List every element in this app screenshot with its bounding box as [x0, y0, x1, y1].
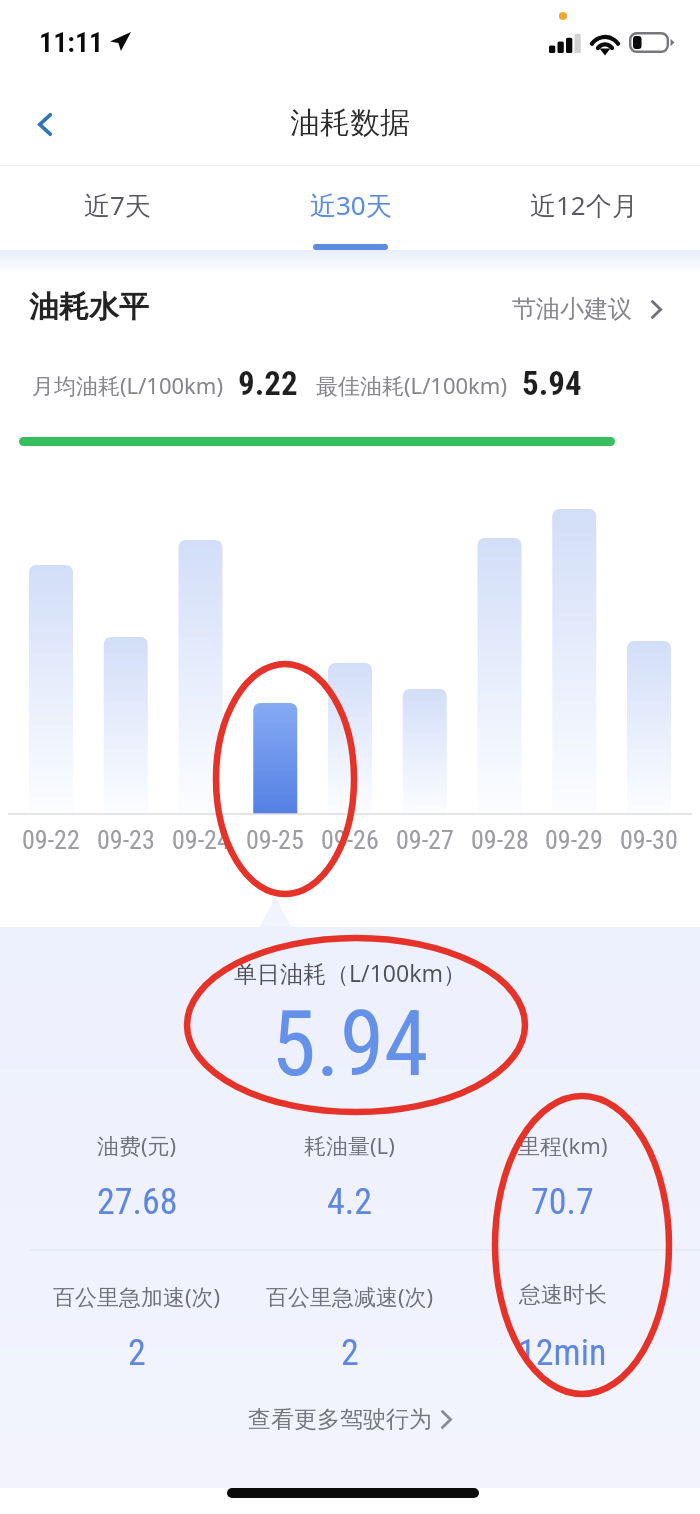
staticText: 近12个月: [530, 187, 638, 223]
button[interactable]: Back: [17, 96, 73, 152]
staticText: 09-29: [545, 825, 603, 855]
staticText: 油耗水平: [29, 288, 149, 326]
staticText: 12min: [518, 1332, 607, 1374]
staticText: 09-22: [22, 825, 80, 855]
staticText: 最佳油耗(L/100km): [316, 370, 507, 400]
staticText: 近7天: [84, 187, 151, 223]
staticText: 怠速时长: [519, 1281, 607, 1309]
staticText: 耗油量(L): [304, 1130, 395, 1160]
button[interactable]: 查看更多驾驶行为: [0, 1405, 700, 1434]
staticText: 近30天: [310, 187, 392, 223]
staticText: 查看更多驾驶行为: [248, 1405, 432, 1434]
staticText: 27.68: [97, 1181, 178, 1223]
staticText: 4.2: [327, 1181, 373, 1223]
staticText: 09-26: [321, 825, 379, 855]
staticText: 11:11: [39, 26, 104, 59]
staticText: 节油小建议: [512, 294, 632, 324]
staticText: 09-30: [620, 825, 678, 855]
button[interactable]: 近12个月: [467, 166, 700, 250]
staticText: 百公里急减速(次): [266, 1281, 434, 1311]
staticText: 油费(元): [97, 1130, 177, 1160]
button[interactable]: 近7天: [0, 166, 234, 250]
staticText: 油耗数据: [290, 104, 410, 142]
button[interactable]: 节油小建议: [512, 294, 662, 324]
staticText: 9.22: [238, 364, 298, 403]
staticText: 09-27: [396, 825, 454, 855]
staticText: 09-24: [172, 825, 230, 855]
staticText: 2: [341, 1332, 359, 1374]
button[interactable]: 近30天: [234, 166, 467, 250]
staticText: 百公里急加速(次): [53, 1281, 221, 1311]
staticText: 09-28: [471, 825, 529, 855]
staticText: 09-25: [246, 825, 304, 855]
staticText: 5.94: [0, 992, 700, 1097]
staticText: 2: [128, 1332, 146, 1374]
staticText: 70.7: [531, 1181, 594, 1223]
staticText: 09-23: [97, 825, 155, 855]
staticText: 5.94: [522, 364, 582, 403]
staticText: 单日油耗（L/100km）: [0, 957, 700, 988]
staticText: 月均油耗(L/100km): [32, 370, 223, 400]
staticText: 里程(km): [518, 1130, 608, 1160]
